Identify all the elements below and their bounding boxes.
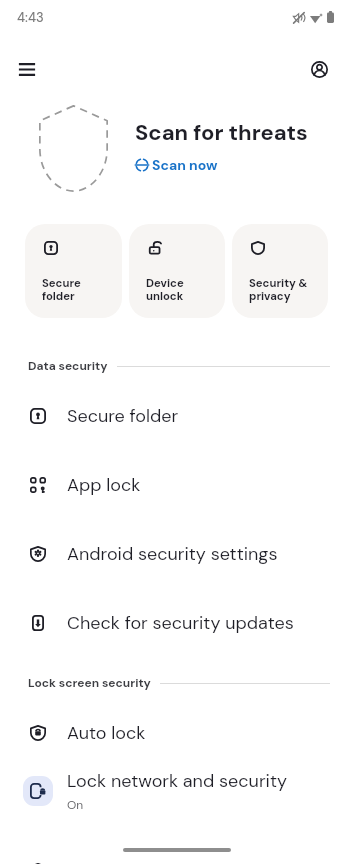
staticText: Secure folder — [42, 276, 81, 303]
button[interactable]: Device unlock — [129, 224, 225, 318]
staticText: Auto lock — [67, 721, 146, 744]
button[interactable]: App lock — [0, 456, 353, 513]
button[interactable]: Auto lock — [0, 704, 353, 761]
staticText: Lock screen security — [28, 675, 151, 691]
button[interactable]: Account — [299, 49, 339, 89]
staticText: Scan for threats — [135, 118, 308, 147]
staticText: Secure folder — [67, 404, 179, 427]
button[interactable]: Secure folder — [0, 387, 353, 444]
button[interactable]: Check for security updates — [0, 594, 353, 651]
staticText: 4:43 — [17, 9, 44, 26]
staticText: Lock network and security — [67, 769, 287, 792]
staticText: Check for security updates — [67, 611, 294, 634]
staticText: App lock — [67, 473, 141, 496]
staticText: Device unlock — [146, 276, 184, 303]
staticText: Data security — [28, 358, 108, 374]
staticText: Scan now — [152, 156, 218, 174]
button[interactable]: Android security settings — [0, 525, 353, 582]
button[interactable]: Scan now — [131, 153, 222, 177]
button[interactable]: Lock network and security — [0, 762, 353, 819]
button[interactable]: Navigation menu — [6, 49, 47, 90]
staticText: Android security settings — [67, 542, 278, 565]
button[interactable]: Security & privacy — [232, 224, 328, 318]
staticText: On — [67, 797, 84, 813]
button[interactable]: Sim card lock settings — [0, 842, 353, 864]
staticText: Security & privacy — [249, 276, 308, 303]
button[interactable]: Secure folder — [25, 224, 122, 318]
